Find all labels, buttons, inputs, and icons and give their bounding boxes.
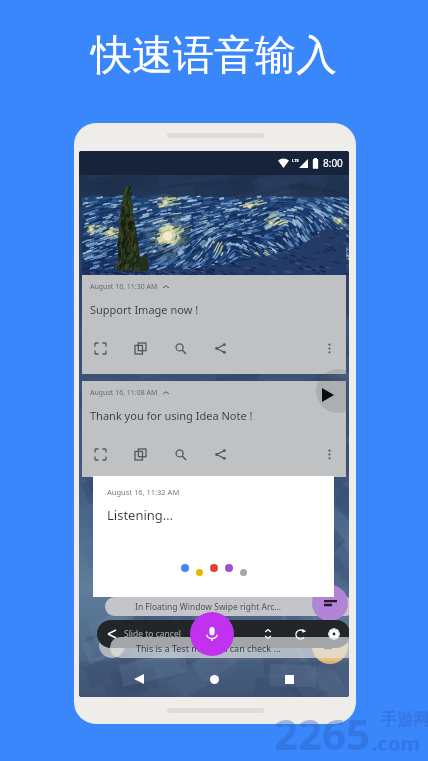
button[interactable]: Search: [171, 445, 189, 463]
staticText: In Floating Window Swipe right Arc…: [135, 601, 282, 613]
button[interactable]: Expand: [91, 339, 109, 357]
button[interactable]: More options: [320, 445, 338, 463]
button[interactable]: Search: [171, 339, 189, 357]
staticText: August 16, 11:32 AM: [107, 487, 180, 497]
staticText: Listening…: [107, 506, 174, 524]
staticText: Thank you for using Idea Note !: [90, 408, 253, 423]
staticText: August 16, 11:30 AM: [90, 282, 158, 292]
staticText: August 16, 11:08 AM: [90, 388, 158, 398]
button[interactable]: August 16, 11:30 AM: [82, 275, 346, 374]
button[interactable]: Play: [316, 369, 349, 413]
button[interactable]: Share: [211, 445, 229, 463]
staticText: 手游网: [381, 710, 428, 730]
button[interactable]: Record voice: [190, 612, 234, 656]
button[interactable]: Share: [211, 339, 229, 357]
staticText: Support Image now !: [90, 302, 199, 317]
button[interactable]: More options: [320, 339, 338, 357]
button[interactable]: Back: [124, 664, 154, 694]
button[interactable]: August 16, 11:08 AM: [82, 381, 346, 477]
staticText: 2265: [274, 705, 371, 761]
staticText: Slide to cancel: [124, 628, 181, 640]
button[interactable]: Copy: [131, 445, 149, 463]
staticText: 快速语音输入: [91, 30, 337, 82]
button[interactable]: Recents: [274, 664, 304, 694]
staticText: LTE: [292, 158, 299, 163]
button[interactable]: Copy: [131, 339, 149, 357]
staticText: 8:00: [323, 156, 343, 170]
button[interactable]: Home: [199, 664, 229, 694]
staticText: .com: [372, 730, 420, 757]
button[interactable]: Expand: [91, 445, 109, 463]
staticText: This is a Test msg you can check …: [136, 642, 281, 654]
